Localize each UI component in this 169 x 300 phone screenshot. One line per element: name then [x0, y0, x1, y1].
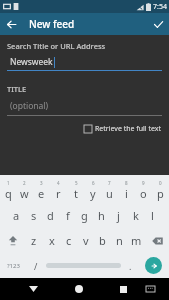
- staticText: q: [5, 186, 12, 201]
- staticText: 1: [7, 180, 10, 186]
- button[interactable]: f: [59, 203, 76, 228]
- button[interactable]: b: [94, 228, 111, 253]
- staticText: 5: [75, 180, 78, 186]
- staticText: j: [117, 208, 120, 223]
- staticText: 6: [92, 180, 95, 186]
- button[interactable]: Shift: [0, 228, 25, 253]
- staticText: ?123: [7, 262, 20, 270]
- staticText: p: [157, 186, 164, 201]
- staticText: TITLE: [7, 84, 27, 94]
- staticText: Newsweek: [10, 56, 53, 68]
- button[interactable]: 4: [50, 178, 67, 203]
- staticText: c: [66, 233, 72, 248]
- button[interactable]: x: [43, 228, 60, 253]
- staticText: a: [13, 208, 20, 223]
- staticText: 4: [57, 180, 60, 186]
- staticText: (optional): [10, 100, 49, 112]
- staticText: 9: [142, 180, 145, 186]
- button[interactable]: Save feed: [147, 13, 169, 35]
- button[interactable]: v: [77, 228, 94, 253]
- button[interactable]: 7: [101, 178, 118, 203]
- button[interactable]: k: [127, 203, 144, 228]
- button[interactable]: Space: [44, 253, 123, 278]
- button[interactable]: s: [25, 203, 42, 228]
- button[interactable]: Backspace: [145, 228, 169, 253]
- button[interactable]: Navigate up: [0, 13, 22, 35]
- button[interactable]: ?123: [0, 253, 27, 278]
- button[interactable]: 1: [0, 178, 16, 203]
- button[interactable]: z: [25, 228, 43, 253]
- button[interactable]: m: [128, 228, 145, 253]
- staticText: Search Title or URL Address: [7, 41, 106, 51]
- staticText: k: [133, 208, 139, 223]
- button[interactable]: /: [27, 253, 44, 278]
- button[interactable]: Hide keyboard: [137, 278, 164, 300]
- staticText: w: [20, 186, 29, 201]
- button[interactable]: 6: [84, 178, 101, 203]
- staticText: z: [31, 233, 37, 248]
- button[interactable]: 5: [67, 178, 84, 203]
- staticText: Retrieve the full text: [95, 124, 162, 134]
- staticText: y: [90, 186, 96, 201]
- staticText: 8: [125, 180, 128, 186]
- staticText: 0: [159, 180, 162, 186]
- button[interactable]: n: [111, 228, 128, 253]
- staticText: u: [106, 186, 113, 201]
- button[interactable]: Retrieve the full text: [84, 122, 162, 136]
- staticText: g: [81, 208, 88, 223]
- button[interactable]: Back: [19, 278, 47, 300]
- staticText: m: [131, 233, 142, 248]
- staticText: New feed: [29, 17, 75, 31]
- staticText: l: [151, 208, 154, 223]
- staticText: 7: [108, 180, 111, 186]
- button[interactable]: c: [60, 228, 77, 253]
- button[interactable]: 2: [16, 178, 33, 203]
- button[interactable]: g: [76, 203, 93, 228]
- staticText: e: [38, 186, 45, 201]
- staticText: b: [99, 233, 106, 248]
- button[interactable]: 9: [135, 178, 152, 203]
- button[interactable]: d: [42, 203, 59, 228]
- staticText: n: [116, 233, 123, 248]
- staticText: v: [83, 233, 89, 248]
- staticText: h: [98, 208, 105, 223]
- button[interactable]: j: [110, 203, 127, 228]
- button[interactable]: Newsweek: [7, 56, 162, 68]
- button[interactable]: 0: [152, 178, 169, 203]
- button[interactable]: Recent apps: [110, 278, 137, 300]
- staticText: r: [56, 186, 61, 201]
- button[interactable]: Home: [65, 278, 92, 300]
- staticText: 2: [23, 180, 26, 186]
- button[interactable]: 3: [33, 178, 50, 203]
- staticText: i: [125, 186, 128, 201]
- staticText: 3: [40, 180, 43, 186]
- staticText: t: [74, 186, 78, 201]
- staticText: 7:54: [153, 2, 167, 12]
- staticText: o: [140, 186, 147, 201]
- button[interactable]: 8: [118, 178, 135, 203]
- staticText: /: [34, 260, 38, 272]
- button[interactable]: h: [93, 203, 110, 228]
- button[interactable]: .: [123, 253, 138, 278]
- staticText: s: [31, 208, 37, 223]
- button[interactable]: (optional): [7, 100, 162, 112]
- staticText: f: [66, 208, 70, 223]
- staticText: x: [49, 233, 55, 248]
- button[interactable]: Enter: [138, 253, 169, 278]
- button[interactable]: l: [144, 203, 161, 228]
- staticText: d: [47, 208, 54, 223]
- staticText: .: [129, 260, 132, 272]
- button[interactable]: a: [8, 203, 25, 228]
